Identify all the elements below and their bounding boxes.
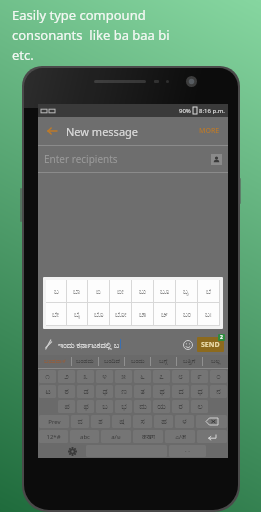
button[interactable]: ಬೃ bbox=[176, 280, 197, 302]
button[interactable]: ಢ bbox=[96, 385, 113, 398]
button[interactable]: ಬ bbox=[96, 400, 113, 413]
staticText: ೮ bbox=[178, 373, 183, 381]
staticText: ಬೈ bbox=[74, 311, 81, 318]
button[interactable]: ಬಂಡದು bbox=[72, 355, 98, 368]
button[interactable]: ಷ bbox=[112, 415, 131, 428]
staticText: ಠ bbox=[64, 388, 69, 396]
staticText: ಯ bbox=[157, 403, 166, 411]
staticText: ಬ bbox=[54, 288, 59, 295]
staticText: ಬಿ bbox=[96, 288, 101, 295]
button[interactable]: ಶ bbox=[91, 415, 110, 428]
staticText: ಬೆ bbox=[206, 288, 212, 295]
button[interactable]: ಥ bbox=[153, 385, 170, 398]
staticText: ಎ/अ bbox=[175, 433, 186, 441]
button[interactable]: ಪ bbox=[58, 400, 75, 413]
button[interactable]: ಧ bbox=[191, 385, 208, 398]
button[interactable]: ಬಂದು bbox=[125, 355, 150, 368]
button[interactable]: ನ bbox=[210, 385, 227, 398]
button[interactable]: a/ಅ bbox=[101, 430, 131, 443]
staticText: etc. bbox=[12, 46, 34, 64]
staticText: ಫ bbox=[83, 403, 89, 411]
button[interactable]: ೨ bbox=[58, 370, 75, 383]
button[interactable]: ಬಂಡವಾಳ bbox=[38, 355, 71, 368]
button[interactable]: Enter bbox=[197, 430, 227, 443]
button[interactable]: ಲ bbox=[191, 400, 208, 413]
button[interactable]: ಠ bbox=[58, 385, 75, 398]
button[interactable]: ಬೇ bbox=[46, 303, 66, 325]
button[interactable]: ರ bbox=[172, 400, 189, 413]
button[interactable]: ಬ್ bbox=[154, 303, 175, 325]
button[interactable]: ಭ bbox=[115, 400, 132, 413]
button[interactable]: SEND bbox=[197, 337, 224, 352]
button[interactable]: कखग bbox=[133, 430, 163, 443]
button[interactable]: abc bbox=[70, 430, 99, 443]
button[interactable]: ಬೌ bbox=[132, 303, 153, 325]
button[interactable]: ೩ bbox=[77, 370, 94, 383]
button[interactable]: ಬತ್ತಿಗೆ bbox=[177, 355, 202, 368]
button[interactable]: ಬಿ bbox=[88, 280, 109, 302]
staticText: ಭ bbox=[121, 403, 127, 411]
button[interactable]: Backspace bbox=[196, 415, 227, 428]
staticText: ಬು bbox=[139, 288, 146, 295]
button[interactable]: Enter recipients bbox=[44, 146, 222, 172]
staticText: ಬಂ bbox=[183, 311, 191, 318]
button[interactable]: ೪ bbox=[96, 370, 113, 383]
staticText: ಬಗ್ಗೆ bbox=[159, 358, 168, 365]
button[interactable]: ಬೆ bbox=[198, 280, 219, 302]
button[interactable]: ೬ bbox=[134, 370, 151, 383]
button[interactable]: ಡ bbox=[77, 385, 94, 398]
button[interactable]: ಫ bbox=[77, 400, 94, 413]
button[interactable]: ಳ bbox=[175, 415, 194, 428]
button[interactable]: ೧ bbox=[39, 370, 56, 383]
button[interactable]: Emoji bbox=[181, 338, 194, 351]
button[interactable]: ಬ bbox=[46, 280, 66, 302]
button[interactable]: Prev bbox=[39, 415, 69, 428]
button[interactable]: ೦ bbox=[210, 370, 227, 383]
button[interactable]: ೫ bbox=[115, 370, 132, 383]
button[interactable]: ೭ bbox=[153, 370, 170, 383]
button[interactable]: MORE bbox=[197, 124, 222, 138]
button[interactable]: ಬು bbox=[132, 280, 153, 302]
button[interactable]: ಮ bbox=[134, 400, 151, 413]
button[interactable]: Settings bbox=[59, 444, 85, 458]
button[interactable]: ಟ bbox=[39, 385, 56, 398]
button[interactable]: 12*# bbox=[39, 430, 68, 443]
button[interactable]: Attach bbox=[42, 338, 55, 351]
button[interactable]: ದ bbox=[172, 385, 189, 398]
staticText: Prev bbox=[48, 418, 61, 426]
button[interactable]: ಬಂದಿದೆ bbox=[99, 355, 124, 368]
staticText: 90% bbox=[179, 107, 191, 115]
button[interactable]: ಬಲ್ಲ bbox=[203, 355, 228, 368]
staticText: ಬ್ bbox=[161, 311, 169, 318]
button[interactable]: ಣ bbox=[115, 385, 132, 398]
staticText: ೭ bbox=[159, 373, 164, 381]
staticText: ಬೊ bbox=[94, 311, 104, 318]
staticText: ಬಲ್ಲ bbox=[211, 358, 221, 365]
staticText: ಬೀ bbox=[117, 288, 124, 295]
button[interactable]: ೯ bbox=[191, 370, 208, 383]
button[interactable]: ಬಗ್ಗೆ bbox=[151, 355, 176, 368]
button[interactable]: ಬೈ bbox=[67, 303, 87, 325]
staticText: ಇಂದು ಕರ್ನಾಟಕದಲ್ಲಿ ಬ bbox=[58, 339, 120, 350]
button[interactable]: ಯ bbox=[153, 400, 170, 413]
button[interactable]: ಬೀ bbox=[110, 280, 131, 302]
button[interactable]: ಬೂ bbox=[154, 280, 175, 302]
button[interactable]: ೮ bbox=[172, 370, 189, 383]
button[interactable]: ಬಃ bbox=[198, 303, 219, 325]
staticText: ಬಂಡವಾಳ bbox=[44, 358, 66, 365]
button[interactable]: ಎ/अ bbox=[165, 430, 195, 443]
button[interactable]: Back bbox=[44, 123, 60, 139]
staticText: ೪ bbox=[102, 373, 107, 381]
button[interactable]: ಹ bbox=[154, 415, 173, 428]
button[interactable]: ತ bbox=[134, 385, 151, 398]
button[interactable]: ಬೋ bbox=[110, 303, 131, 325]
button[interactable]: ಬೊ bbox=[88, 303, 109, 325]
button[interactable]: ಬಂ bbox=[176, 303, 197, 325]
button[interactable]: ಬಾ bbox=[67, 280, 87, 302]
staticText: abc bbox=[80, 433, 90, 441]
button[interactable]: ವ bbox=[71, 415, 89, 428]
staticText: 12*# bbox=[46, 433, 61, 441]
button[interactable]: ಸ bbox=[133, 415, 152, 428]
